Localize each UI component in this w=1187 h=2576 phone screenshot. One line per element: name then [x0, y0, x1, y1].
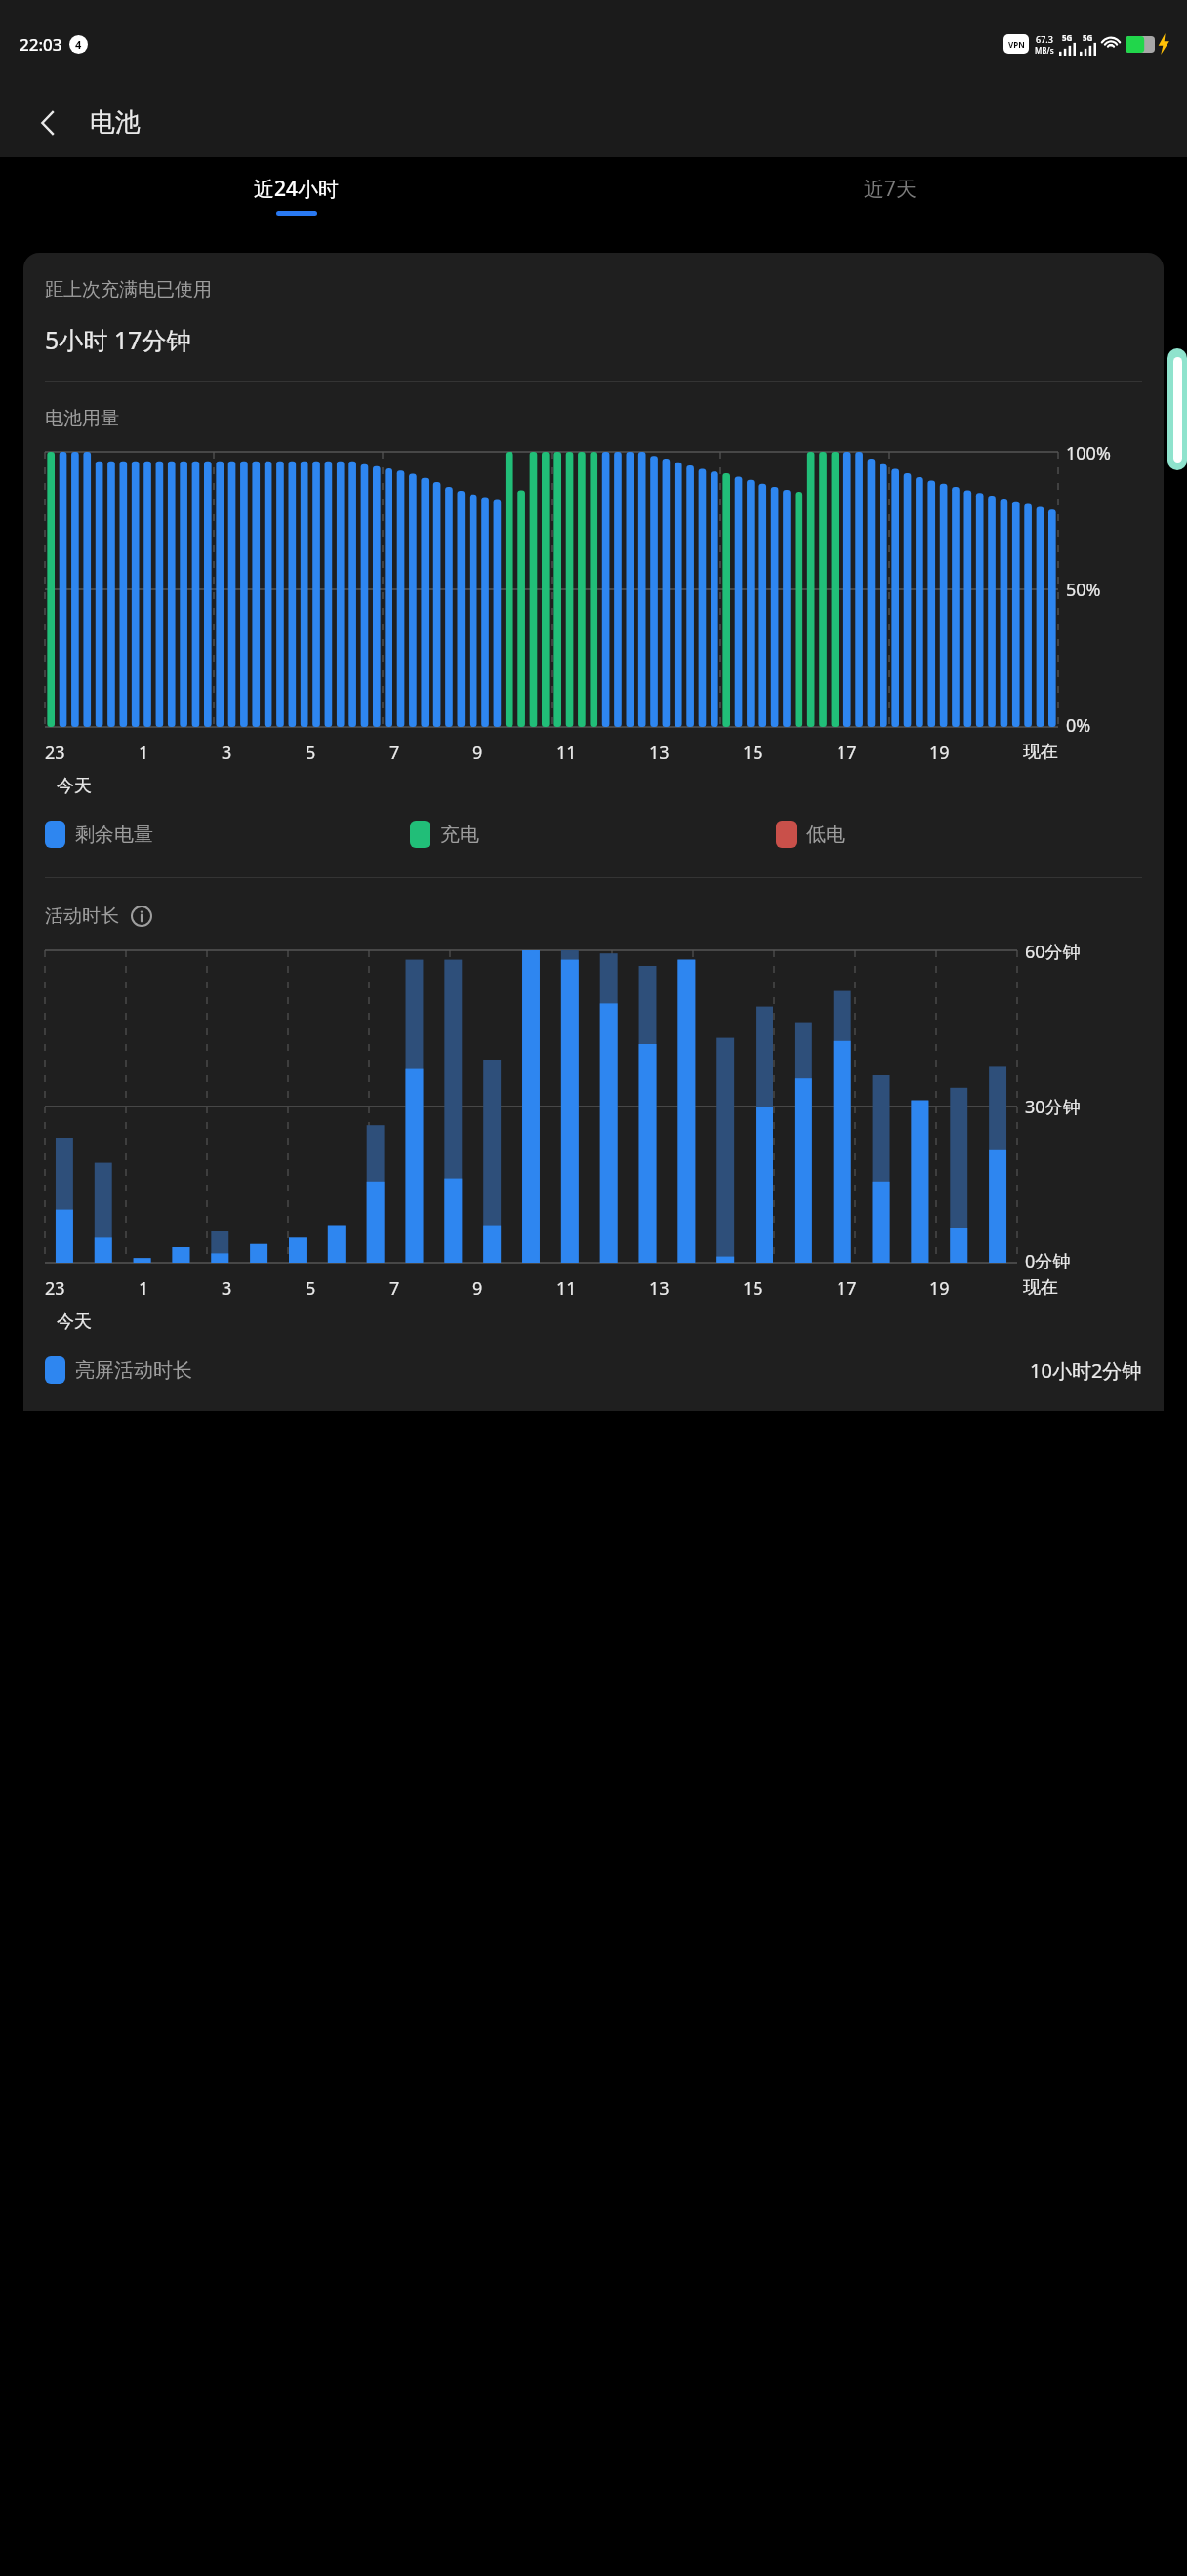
staticText: 4: [75, 37, 82, 52]
button[interactable]: 近7天: [593, 157, 1187, 233]
button[interactable]: 低电: [776, 821, 1142, 848]
staticText: 1: [139, 1276, 149, 1301]
staticText: MB/s: [1035, 45, 1054, 56]
button[interactable]: 亮屏活动时长: [45, 1356, 1142, 1384]
staticText: 7: [389, 1276, 400, 1301]
staticText: 11: [556, 1276, 577, 1301]
staticText: 现在: [1023, 741, 1058, 763]
button[interactable]: Back: [21, 96, 76, 150]
button[interactable]: 近24小时: [0, 157, 593, 233]
staticText: 电池用量: [45, 407, 119, 430]
staticText: 充电: [440, 823, 479, 847]
staticText: 30分钟: [1025, 1095, 1081, 1119]
staticText: 电池: [90, 106, 141, 139]
staticText: 5: [306, 741, 316, 765]
staticText: 今天: [57, 1310, 92, 1333]
staticText: 近7天: [864, 175, 918, 203]
staticText: 活动时长: [45, 905, 119, 928]
staticText: 10小时2分钟: [1030, 1357, 1142, 1384]
staticText: 17: [837, 1276, 857, 1301]
staticText: 15: [743, 1276, 763, 1301]
staticText: 近24小时: [254, 175, 340, 203]
staticText: 剩余电量: [75, 823, 153, 847]
staticText: 亮屏活动时长: [75, 1358, 192, 1383]
staticText: 5: [306, 1276, 316, 1301]
staticText: 低电: [806, 823, 845, 847]
staticText: VPN: [1008, 39, 1025, 50]
staticText: 1: [139, 741, 149, 765]
staticText: 13: [649, 741, 670, 765]
staticText: 距上次充满电已使用: [45, 278, 212, 302]
staticText: 9: [472, 741, 483, 765]
staticText: 23: [45, 741, 65, 765]
button[interactable]: 剩余电量: [45, 821, 410, 848]
staticText: 67.3: [1036, 33, 1053, 45]
staticText: 5G: [1062, 32, 1073, 43]
staticText: 9: [472, 1276, 483, 1301]
staticText: 7: [389, 741, 400, 765]
staticText: 100%: [1066, 441, 1111, 465]
staticText: 现在: [1023, 1276, 1058, 1299]
staticText: 13: [649, 1276, 670, 1301]
staticText: 3: [222, 1276, 232, 1301]
staticText: 60分钟: [1025, 940, 1081, 964]
staticText: 23: [45, 1276, 65, 1301]
staticText: 5G: [1083, 32, 1093, 43]
staticText: 3: [222, 741, 232, 765]
staticText: 17: [837, 741, 857, 765]
staticText: 0%: [1066, 713, 1091, 738]
staticText: 0分钟: [1025, 1249, 1071, 1273]
staticText: 5小时 17分钟: [45, 323, 191, 356]
button[interactable]: Info: [129, 904, 154, 929]
staticText: 15: [743, 741, 763, 765]
button[interactable]: 充电: [410, 821, 776, 848]
staticText: 11: [556, 741, 577, 765]
staticText: 19: [929, 1276, 950, 1301]
staticText: 22:03: [20, 33, 62, 56]
staticText: 50%: [1066, 578, 1101, 602]
staticText: 19: [929, 741, 950, 765]
staticText: 今天: [57, 775, 92, 797]
